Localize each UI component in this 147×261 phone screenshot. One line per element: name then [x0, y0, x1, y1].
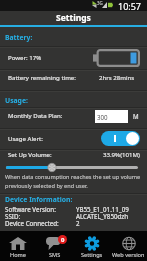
- staticText: 10:57: [118, 0, 142, 11]
- staticText: Device Connected:: [5, 219, 59, 227]
- button[interactable]: Settings: [73, 231, 110, 261]
- staticText: Usage:: [5, 96, 28, 105]
- staticText: Device Information:: [5, 195, 73, 204]
- button[interactable]: [6, 162, 138, 173]
- staticText: Power: 17%: [8, 53, 42, 61]
- staticText: Usage Alert:: [8, 134, 43, 142]
- staticText: 2hrs 28mins: [99, 73, 135, 81]
- staticText: 3G: [97, 0, 103, 6]
- staticText: M: [133, 112, 139, 120]
- staticText: SSID:: [5, 212, 21, 220]
- staticText: Settings: [56, 12, 91, 24]
- staticText: Battery remaining time:: [8, 73, 76, 81]
- staticText: ALCATEL_Y850dzh: [76, 212, 129, 220]
- staticText: Battery:: [5, 33, 33, 42]
- staticText: 300: [97, 113, 108, 121]
- button[interactable]: [101, 131, 140, 146]
- staticText: When data consumption reaches the set up…: [5, 173, 143, 189]
- staticText: Settings: [81, 251, 103, 259]
- staticText: Set Up Volume:: [8, 150, 52, 158]
- staticText: 33.9%(101M): [103, 150, 140, 158]
- staticText: 2: [76, 219, 80, 227]
- staticText: Web version: [112, 251, 145, 259]
- staticText: Monthly Data Plan:: [8, 111, 63, 119]
- button[interactable]: Web version: [110, 231, 147, 261]
- staticText: SMS: [49, 251, 61, 259]
- button[interactable]: 300: [95, 110, 128, 123]
- staticText: YB55_E1_01.11_09: [76, 205, 129, 213]
- staticText: 0: [61, 236, 65, 244]
- button[interactable]: Home: [0, 231, 36, 261]
- staticText: Software Version:: [5, 205, 56, 213]
- button[interactable]: SMS: [36, 231, 73, 261]
- staticText: Home: [10, 251, 26, 259]
